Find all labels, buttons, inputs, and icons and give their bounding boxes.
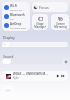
button[interactable]: Wi-Fi <box>4 4 29 11</box>
button[interactable]: Sound output <box>63 59 68 64</box>
staticText: Contacts Only <box>10 26 27 29</box>
button[interactable]: Screen Mirroring <box>51 14 69 30</box>
button[interactable] <box>2 42 68 47</box>
staticText: Sound <box>3 54 14 59</box>
button[interactable]: Bluetooth <box>4 13 29 20</box>
staticText: WOLK — UNKNOWN M… <box>13 72 48 76</box>
button[interactable]: Keyboard brightness <box>2 85 13 95</box>
staticText: Bluetooth <box>10 13 25 17</box>
button[interactable]: Play <box>56 74 60 78</box>
staticText: On <box>10 17 14 20</box>
staticText: Stage Manager <box>34 22 46 29</box>
staticText: Display <box>3 35 15 40</box>
staticText: Focus <box>39 5 49 10</box>
button[interactable]: Next track <box>61 74 65 78</box>
staticText: Wi-Fi <box>10 4 18 8</box>
staticText: Screen Mirroring <box>54 22 67 29</box>
staticText: Library 5G <box>10 8 23 11</box>
button[interactable]: Stage Manager <box>32 14 48 30</box>
button[interactable]: AirDrop <box>4 22 29 29</box>
staticText: AirDrop <box>10 22 22 26</box>
button[interactable]: Focus <box>32 2 68 12</box>
button[interactable] <box>2 59 62 64</box>
staticText: Kylie <box>13 76 19 80</box>
button[interactable]: WOLK — UNKNOWN M… <box>2 71 68 81</box>
